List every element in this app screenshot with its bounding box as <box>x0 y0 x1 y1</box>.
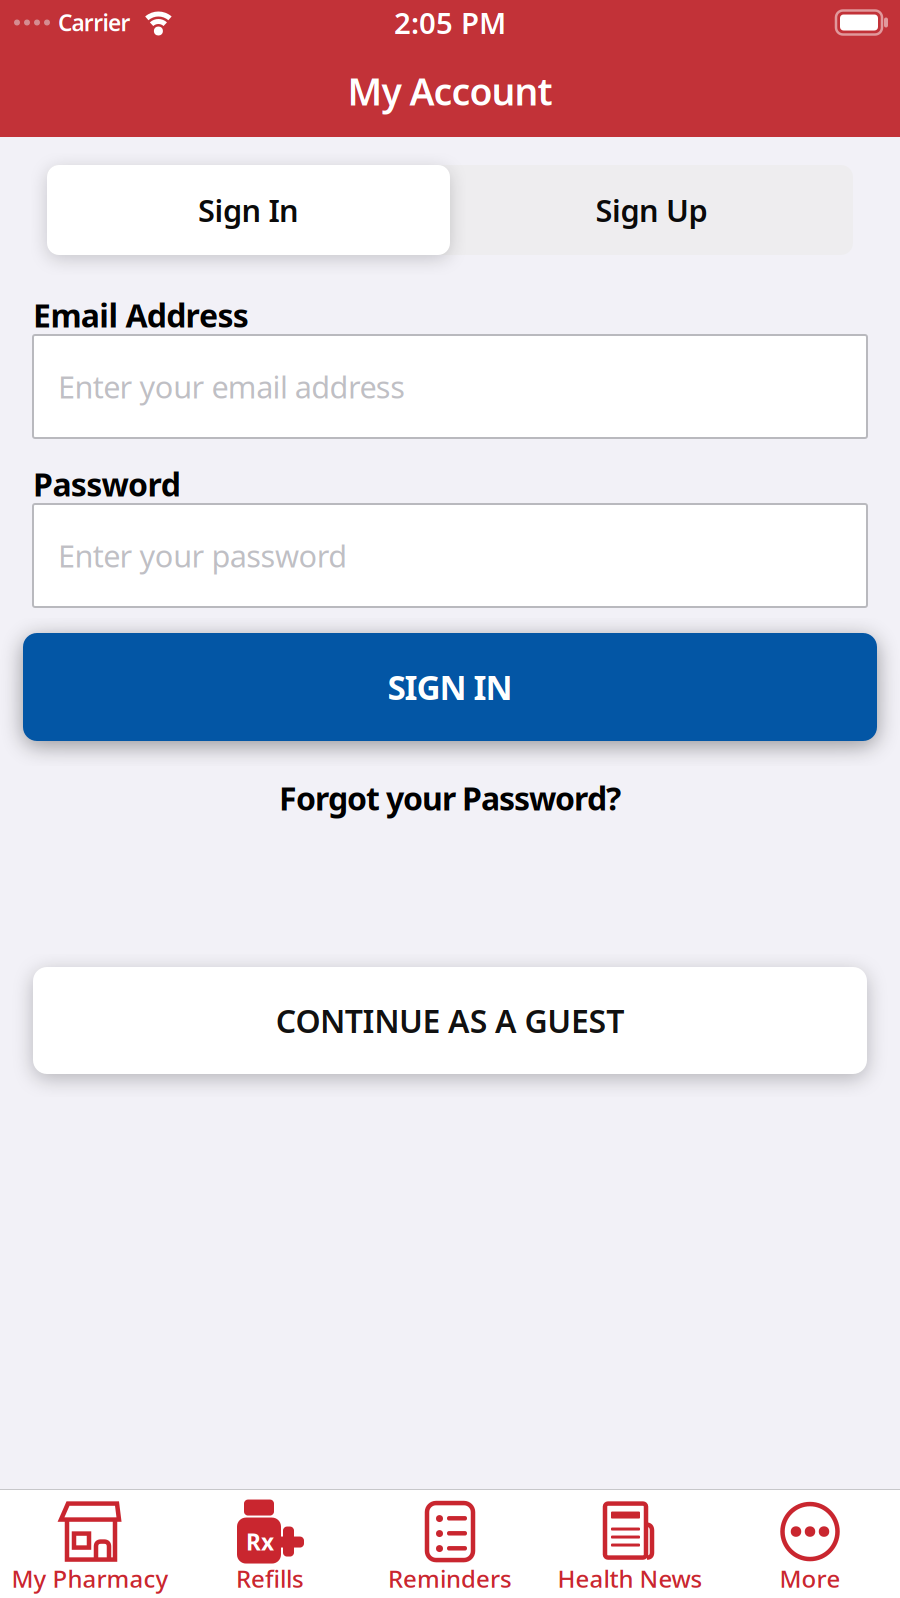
staticText: Enter your email address <box>58 366 405 407</box>
staticText: Sign Up <box>595 190 707 230</box>
button[interactable]: Health News <box>540 1494 720 1594</box>
button[interactable]: My Pharmacy <box>0 1494 180 1594</box>
staticText: My Pharmacy <box>11 1563 168 1594</box>
staticText: SIGN IN <box>387 665 512 709</box>
button[interactable]: Sign In <box>47 165 450 255</box>
staticText: Sign In <box>198 190 299 230</box>
staticText: Forgot your Password? <box>279 777 621 819</box>
staticText: Health News <box>557 1563 702 1594</box>
staticText: Enter your password <box>58 535 347 576</box>
button[interactable]: CONTINUE AS A GUEST <box>33 967 867 1074</box>
button[interactable]: Enter your email address <box>33 335 867 438</box>
button[interactable]: SIGN IN <box>23 633 877 741</box>
button[interactable]: More <box>720 1494 900 1594</box>
staticText: Carrier <box>58 7 130 37</box>
staticText: Email Address <box>33 294 249 336</box>
staticText: More <box>779 1563 840 1594</box>
staticText: Password <box>33 463 181 505</box>
button[interactable]: Sign Up <box>450 165 853 255</box>
staticText: 2:05 PM <box>394 3 506 42</box>
staticText: Reminders <box>388 1563 512 1594</box>
button[interactable]: Rx <box>180 1494 360 1594</box>
staticText: My Account <box>347 66 552 116</box>
staticText: Rx <box>246 1527 274 1557</box>
staticText: Refills <box>236 1563 304 1594</box>
staticText: CONTINUE AS A GUEST <box>276 999 624 1042</box>
button[interactable]: Forgot your Password? <box>279 775 621 821</box>
button[interactable]: Enter your password <box>33 504 867 607</box>
button[interactable]: Reminders <box>360 1494 540 1594</box>
